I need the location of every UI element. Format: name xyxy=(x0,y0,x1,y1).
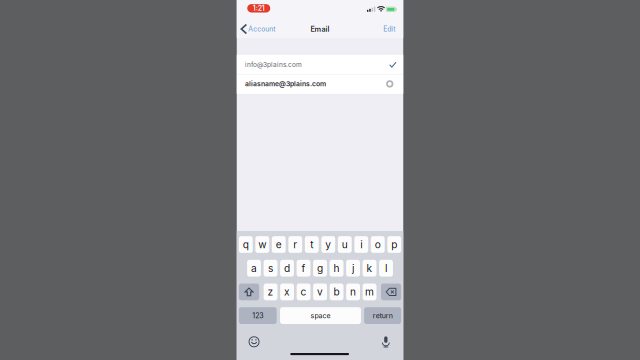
button[interactable]: Account xyxy=(237,0,279,18)
staticText: o xyxy=(375,238,381,251)
staticText: Edit xyxy=(383,25,395,33)
staticText: m xyxy=(365,286,374,298)
staticText: h xyxy=(333,262,339,274)
staticText: n xyxy=(350,286,356,298)
button[interactable]: h xyxy=(330,260,343,277)
staticText: g xyxy=(317,262,323,274)
staticText: return xyxy=(373,311,393,320)
staticText: z xyxy=(268,286,274,298)
button[interactable]: f xyxy=(297,260,310,277)
button[interactable]: u xyxy=(338,236,352,253)
button[interactable]: j xyxy=(346,260,360,277)
button[interactable]: g xyxy=(313,260,327,277)
button[interactable]: space xyxy=(280,307,361,324)
button[interactable]: s xyxy=(264,260,277,277)
staticText: p xyxy=(391,238,397,251)
button[interactable]: w xyxy=(255,236,269,253)
staticText: d xyxy=(284,262,290,274)
button[interactable]: i xyxy=(354,236,368,253)
button[interactable]: d xyxy=(280,260,294,277)
button[interactable]: n xyxy=(346,283,360,300)
button[interactable]: return xyxy=(364,307,401,324)
staticText: f xyxy=(301,262,305,274)
button[interactable]: Delete xyxy=(381,283,401,300)
button[interactable]: r xyxy=(288,236,302,253)
staticText: q xyxy=(243,238,249,251)
button[interactable]: Edit xyxy=(237,0,263,18)
staticText: u xyxy=(342,238,348,251)
staticText: i xyxy=(360,238,362,251)
button[interactable]: v xyxy=(313,283,327,300)
button[interactable]: e xyxy=(272,236,286,253)
staticText: s xyxy=(268,262,273,274)
button[interactable]: Dictation xyxy=(237,0,250,13)
button[interactable]: p xyxy=(387,236,401,253)
button[interactable]: a xyxy=(247,260,261,277)
button[interactable]: c xyxy=(297,283,310,300)
staticText: k xyxy=(366,262,372,274)
staticText: w xyxy=(258,238,266,251)
staticText: r xyxy=(293,238,297,251)
staticText: 1:21 xyxy=(253,4,265,12)
button[interactable]: l xyxy=(379,260,393,277)
button[interactable]: Shift xyxy=(239,283,259,300)
button[interactable]: x xyxy=(280,283,294,300)
staticText: Account xyxy=(248,25,275,33)
staticText: x xyxy=(284,286,290,298)
staticText: a xyxy=(251,262,257,274)
staticText: space xyxy=(310,311,330,320)
button[interactable]: q xyxy=(239,236,253,253)
staticText: e xyxy=(276,238,282,251)
button[interactable]: m xyxy=(363,283,376,300)
button[interactable]: Emoji keyboard xyxy=(237,0,250,13)
button[interactable]: k xyxy=(363,260,376,277)
button[interactable]: 123 xyxy=(239,307,277,324)
button[interactable]: t xyxy=(305,236,319,253)
staticText: l xyxy=(385,262,387,274)
staticText: aliasname@3plains.com xyxy=(245,80,326,88)
staticText: b xyxy=(334,286,340,298)
button[interactable]: b xyxy=(330,283,343,300)
staticText: y xyxy=(325,238,331,251)
staticText: info@3plains.com xyxy=(245,61,302,68)
button[interactable]: info@3plains.com xyxy=(237,55,403,74)
staticText: Email xyxy=(310,25,329,33)
button[interactable]: aliasname@3plains.com xyxy=(237,74,403,94)
button[interactable]: o xyxy=(371,236,385,253)
staticText: t xyxy=(310,238,313,251)
button[interactable]: z xyxy=(264,283,277,300)
staticText: j xyxy=(352,262,354,274)
staticText: v xyxy=(317,286,323,298)
staticText: 123 xyxy=(252,311,263,320)
staticText: c xyxy=(301,286,307,298)
button[interactable]: y xyxy=(321,236,335,253)
